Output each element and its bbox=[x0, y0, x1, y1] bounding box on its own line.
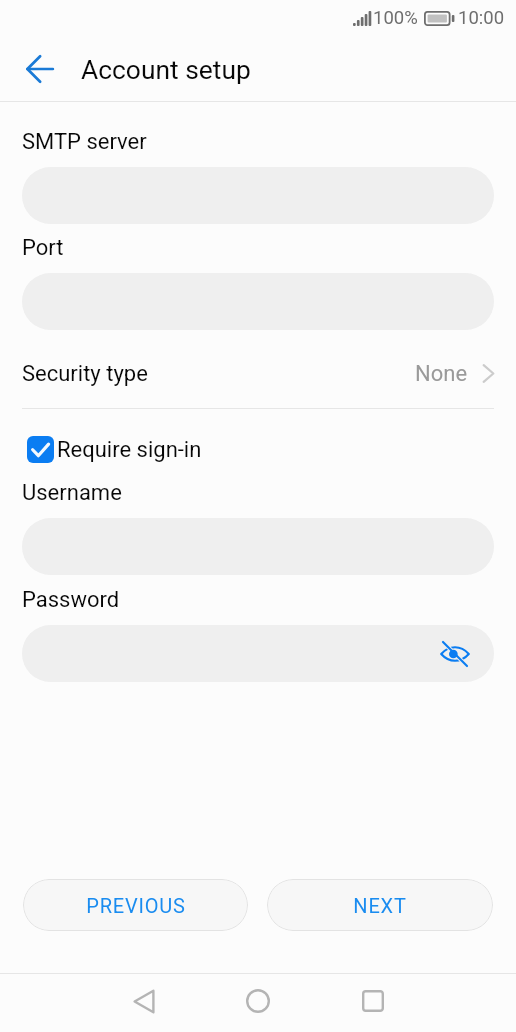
staticText: Account setup bbox=[81, 55, 251, 86]
staticText: SMTP server bbox=[22, 129, 147, 155]
staticText: PREVIOUS bbox=[86, 894, 186, 917]
staticText: Password bbox=[22, 587, 120, 613]
button[interactable]: Require sign-in bbox=[0, 436, 516, 463]
staticText: Security type bbox=[22, 361, 148, 387]
button[interactable]: Show password bbox=[437, 636, 473, 672]
button[interactable]: Back bbox=[16, 45, 64, 93]
staticText: Username bbox=[22, 480, 122, 506]
button[interactable]: Home bbox=[234, 977, 282, 1025]
button[interactable]: NEXT bbox=[267, 879, 493, 931]
button[interactable]: Security type bbox=[0, 347, 516, 408]
button[interactable]: Back bbox=[120, 977, 168, 1025]
staticText: None bbox=[415, 361, 468, 387]
staticText: 100% bbox=[373, 7, 418, 29]
button[interactable]: Recents bbox=[349, 977, 397, 1025]
staticText: Require sign-in bbox=[57, 437, 202, 463]
button[interactable]: PREVIOUS bbox=[23, 879, 248, 931]
staticText: NEXT bbox=[353, 894, 407, 917]
staticText: Port bbox=[22, 235, 64, 261]
staticText: 10:00 bbox=[458, 7, 505, 29]
button[interactable]: Show password bbox=[22, 625, 494, 682]
